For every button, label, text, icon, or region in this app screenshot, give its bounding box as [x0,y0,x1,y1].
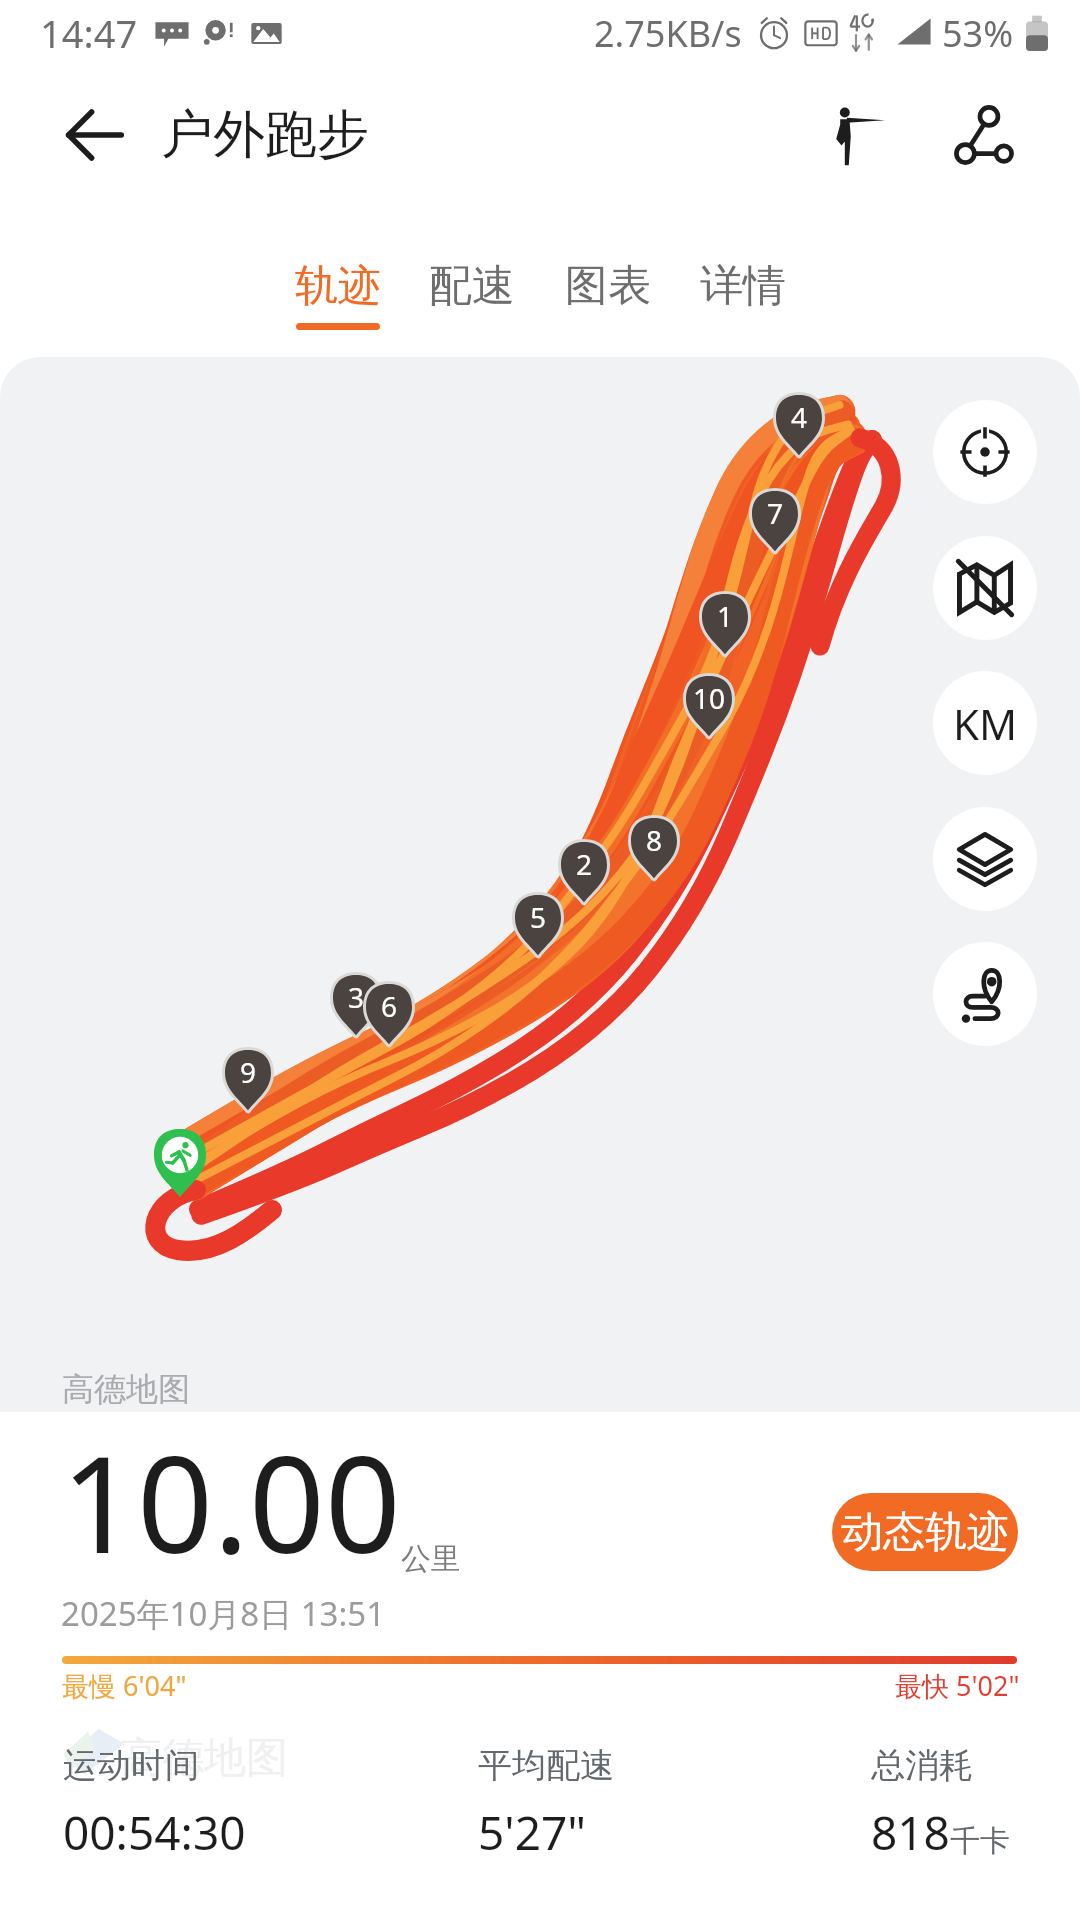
staticText: 00:54:30 [63,1801,246,1864]
staticText: 1 [717,597,734,635]
staticText: 7 [767,494,784,532]
button[interactable]: 图表 [541,259,675,359]
staticText: 3 [348,978,365,1016]
staticText: 5'27" [478,1801,587,1864]
staticText: 详情 [700,259,786,313]
staticText: 动态轨迹 [841,1506,1009,1559]
staticText: 配速 [429,259,515,313]
button[interactable]: Running mode [805,80,915,190]
button[interactable]: 配速 [405,259,539,359]
staticText: 10.00 [61,1411,401,1592]
staticText: 平均配速 [478,1744,614,1787]
button[interactable]: Back [40,80,150,190]
staticText: 图表 [565,259,651,313]
staticText: 14:47 [40,7,138,59]
staticText: KM [953,695,1018,752]
staticText: 总消耗 [871,1744,973,1787]
button[interactable]: 动态轨迹 [832,1493,1018,1571]
button[interactable]: 详情 [676,259,810,359]
staticText: 公里 [401,1540,461,1578]
button[interactable]: Unit [933,671,1037,775]
staticText: 户外跑步 [161,102,369,168]
button[interactable]: Share [929,80,1039,190]
button[interactable]: Layers [933,807,1037,911]
button[interactable]: Route [933,942,1037,1046]
staticText: 高德地图 [62,1369,190,1409]
staticText: 53% [942,9,1014,58]
staticText: 4 [791,398,808,436]
staticText: 9 [240,1053,257,1091]
staticText: 818 [871,1801,950,1864]
staticText: 最快 5'02" [895,1667,1020,1704]
staticText: 最慢 6'04" [62,1667,187,1704]
staticText: 8 [646,821,663,859]
staticText: 运动时间 [63,1744,199,1787]
staticText: 轨迹 [295,259,381,313]
staticText: 2 [576,845,593,883]
button[interactable]: Toggle map layer [933,536,1037,640]
staticText: 6 [381,987,398,1025]
button[interactable]: Locate [933,400,1037,504]
button[interactable]: 轨迹 [271,259,405,359]
staticText: 5 [530,898,547,936]
staticText: 2.75KB/s [594,9,742,58]
staticText: 2025年10月8日 13:51 [61,1591,386,1636]
staticText: 高德地图 [120,1732,288,1785]
staticText: 千卡 [950,1822,1010,1860]
staticText: 10 [693,679,726,717]
